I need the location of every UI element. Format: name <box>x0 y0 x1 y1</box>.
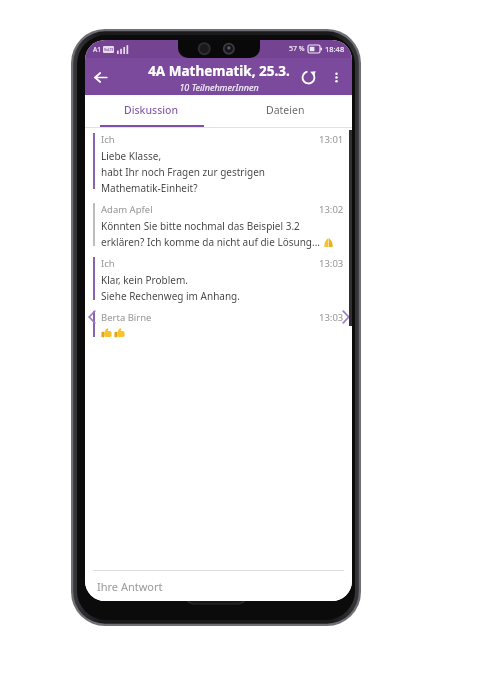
staticText: Ich <box>101 257 115 270</box>
staticText: 57 % <box>289 44 305 54</box>
staticText: Ich <box>101 133 115 146</box>
staticText: 13:03 <box>319 257 344 270</box>
staticText: 13:03 <box>319 311 344 324</box>
button[interactable]: Ihre Antwort <box>85 571 352 601</box>
staticText: Diskussion <box>124 103 179 117</box>
button[interactable]: Ich <box>85 128 352 198</box>
staticText: habt Ihr noch Fragen zur gestrigen <box>101 165 266 179</box>
button[interactable]: More options <box>323 64 349 90</box>
staticText: 13:01 <box>319 133 344 146</box>
staticText: Dateien <box>266 103 305 117</box>
staticText: Liebe Klasse, <box>101 149 162 163</box>
staticText: Könnten Sie bitte nochmal das Beispiel 3… <box>101 219 300 233</box>
staticText: 13:02 <box>319 203 344 216</box>
staticText: 4A Mathematik, 25.3. <box>148 62 290 80</box>
button[interactable]: Adam Apfel <box>85 198 352 252</box>
staticText: Klar, kein Problem. <box>101 273 188 287</box>
button[interactable]: Refresh <box>293 62 323 92</box>
button[interactable]: Back <box>85 62 115 92</box>
staticText: Mathematik-Einheit? <box>101 181 198 195</box>
staticText: Adam Apfel <box>101 203 153 216</box>
staticText: A1 <box>93 45 101 54</box>
staticText: 10 TeilnehmerInnen <box>179 81 259 93</box>
button[interactable]: Ich <box>85 252 352 306</box>
staticText: Ihre Antwort <box>97 579 163 594</box>
staticText: Siehe Rechenweg im Anhang. <box>101 289 240 303</box>
button[interactable]: Dateien <box>218 95 352 125</box>
button[interactable]: Diskussion <box>85 95 218 125</box>
staticText: VoLTE <box>104 48 114 52</box>
staticText: erklären? Ich komme da nicht auf die Lös… <box>101 235 321 249</box>
staticText: Berta Birne <box>101 311 152 324</box>
staticText: 18:48 <box>325 44 345 54</box>
button[interactable]: Berta Birne <box>85 306 352 341</box>
